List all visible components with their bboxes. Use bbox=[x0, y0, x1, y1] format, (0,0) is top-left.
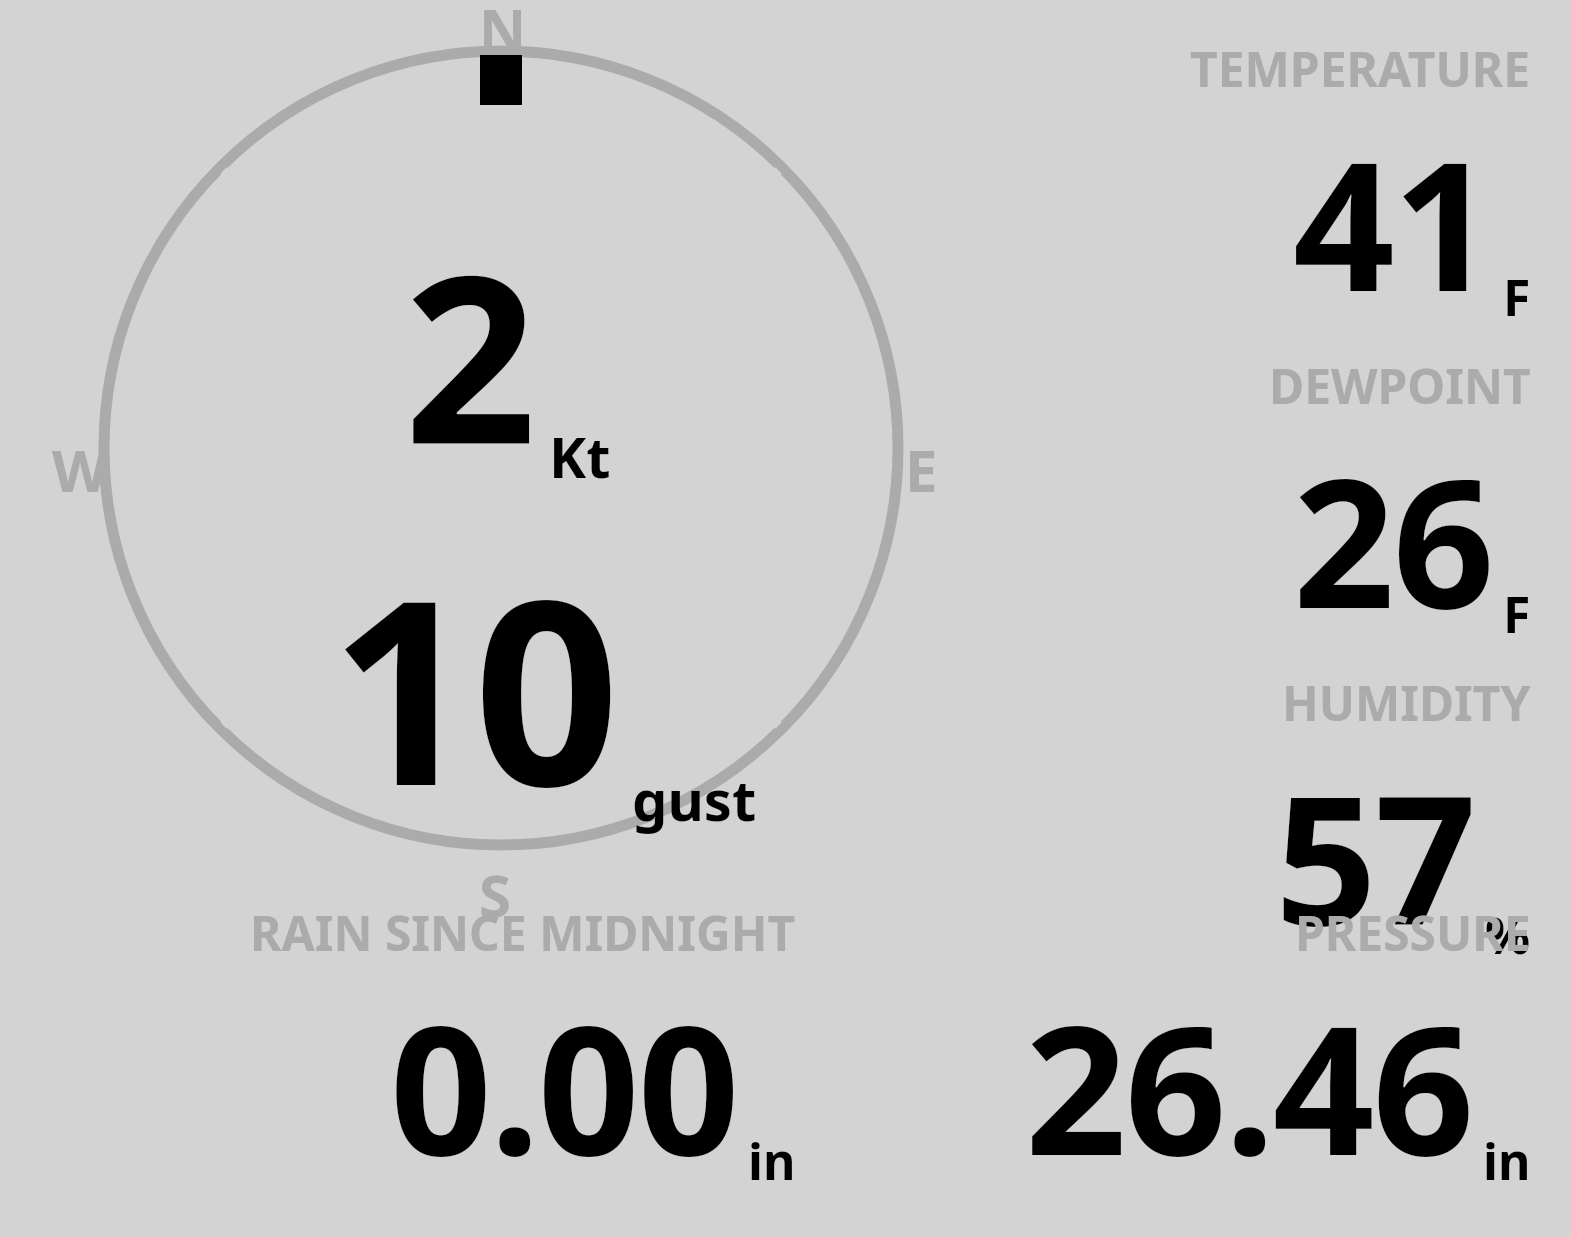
staticText: F bbox=[1503, 580, 1531, 648]
button[interactable]: RAIN SINCE MIDNIGHT bbox=[250, 900, 796, 1207]
staticText: in bbox=[1483, 1127, 1531, 1195]
staticText: S bbox=[479, 855, 511, 934]
staticText: 26 bbox=[1293, 418, 1493, 660]
staticText: 57 bbox=[1275, 735, 1475, 977]
staticText: HUMIDITY bbox=[1282, 670, 1531, 735]
staticText: TEMPERATURE bbox=[1190, 36, 1531, 101]
staticText: E bbox=[905, 430, 938, 509]
staticText: PRESSURE bbox=[1295, 900, 1531, 965]
staticText: 41 bbox=[1293, 101, 1493, 343]
button[interactable]: PRESSURE bbox=[1025, 900, 1531, 1207]
staticText: N bbox=[479, 0, 527, 68]
staticText: in bbox=[748, 1127, 796, 1195]
staticText: 26.46 bbox=[1025, 965, 1473, 1207]
staticText: DEWPOINT bbox=[1269, 353, 1531, 418]
staticText: 2 bbox=[404, 196, 535, 512]
staticText: 10 bbox=[330, 512, 618, 859]
staticText: RAIN SINCE MIDNIGHT bbox=[250, 900, 796, 965]
staticText: 0.00 bbox=[390, 965, 738, 1207]
staticText: Kt bbox=[549, 418, 611, 494]
button[interactable]: Wind compass bbox=[90, 34, 912, 864]
staticText: W bbox=[52, 430, 109, 509]
button[interactable]: HUMIDITY bbox=[1275, 670, 1531, 977]
staticText: F bbox=[1503, 263, 1531, 331]
staticText: % bbox=[1485, 901, 1531, 969]
staticText: gust bbox=[632, 761, 757, 837]
button[interactable]: DEWPOINT bbox=[1269, 353, 1531, 660]
button[interactable]: TEMPERATURE bbox=[1190, 36, 1531, 343]
